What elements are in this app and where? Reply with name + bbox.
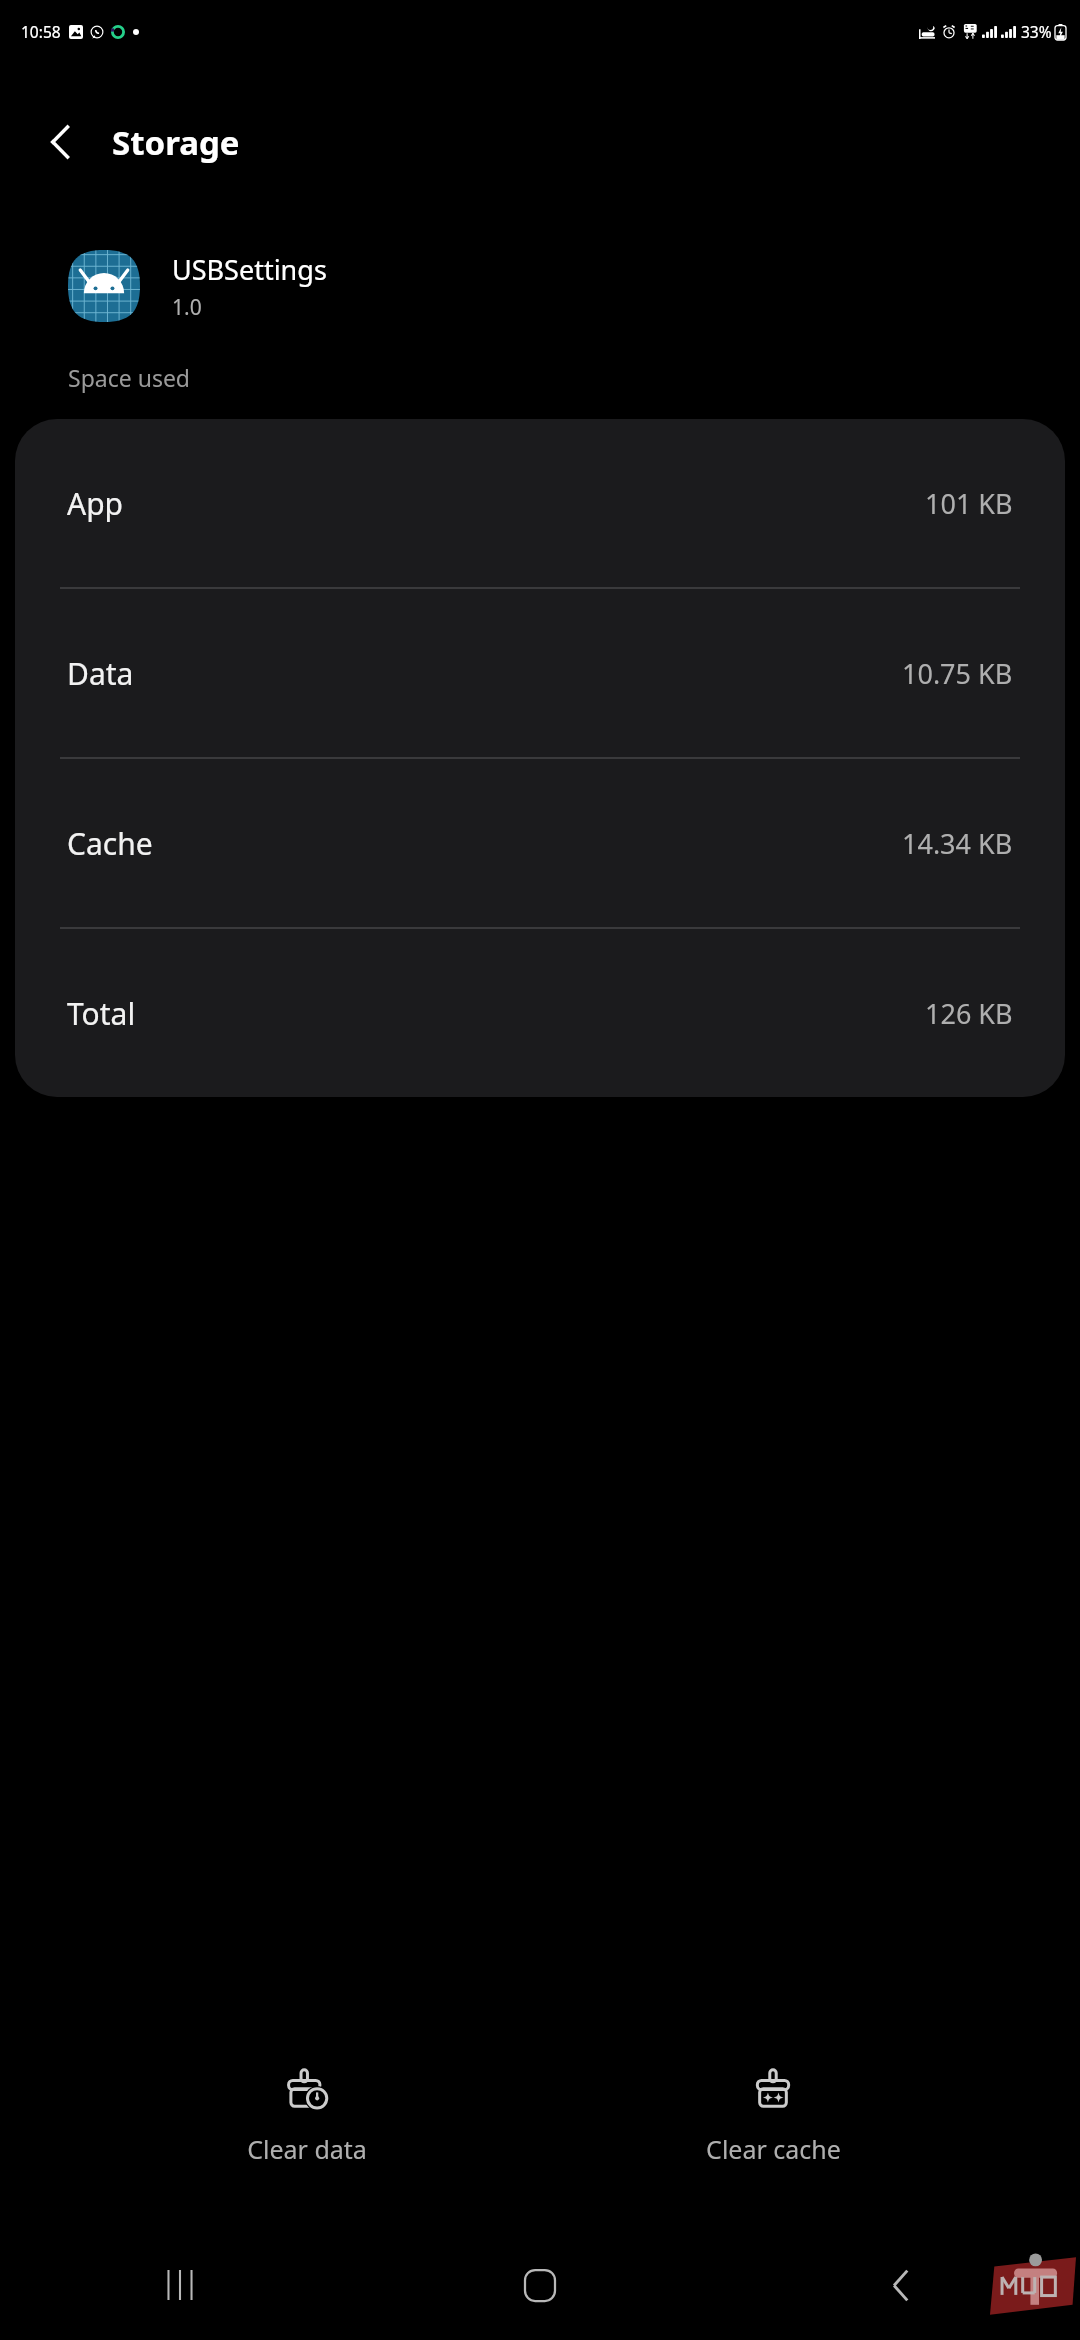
staticText: Cache (67, 823, 153, 864)
button[interactable]: Clear cache (613, 2058, 933, 2176)
staticText: Clear data (247, 2132, 367, 2166)
button[interactable]: Clear data (147, 2058, 467, 2176)
button[interactable]: Recents (0, 2230, 360, 2340)
staticText: 10:58 (21, 21, 61, 42)
staticText: 33% (1021, 21, 1052, 42)
staticText: Storage (112, 120, 240, 165)
staticText: 10.75 KB (902, 655, 1013, 692)
staticText: 1.0 (172, 293, 202, 322)
staticText: 126 KB (925, 995, 1013, 1032)
button[interactable]: Back (720, 2230, 1080, 2340)
staticText: Data (67, 653, 134, 694)
staticText: Space used (68, 362, 191, 393)
staticText: App (67, 483, 124, 524)
staticText: Total (67, 993, 136, 1034)
button[interactable]: App (15, 419, 1065, 587)
button[interactable]: Home (360, 2230, 720, 2340)
button[interactable]: Back (30, 112, 90, 172)
staticText: Clear cache (706, 2132, 841, 2166)
staticText: 14.34 KB (902, 825, 1013, 862)
staticText: USBSettings (172, 251, 327, 288)
button[interactable]: Total (15, 929, 1065, 1097)
button[interactable]: Data (15, 589, 1065, 757)
button[interactable]: Cache (15, 759, 1065, 927)
staticText: 101 KB (925, 485, 1013, 522)
